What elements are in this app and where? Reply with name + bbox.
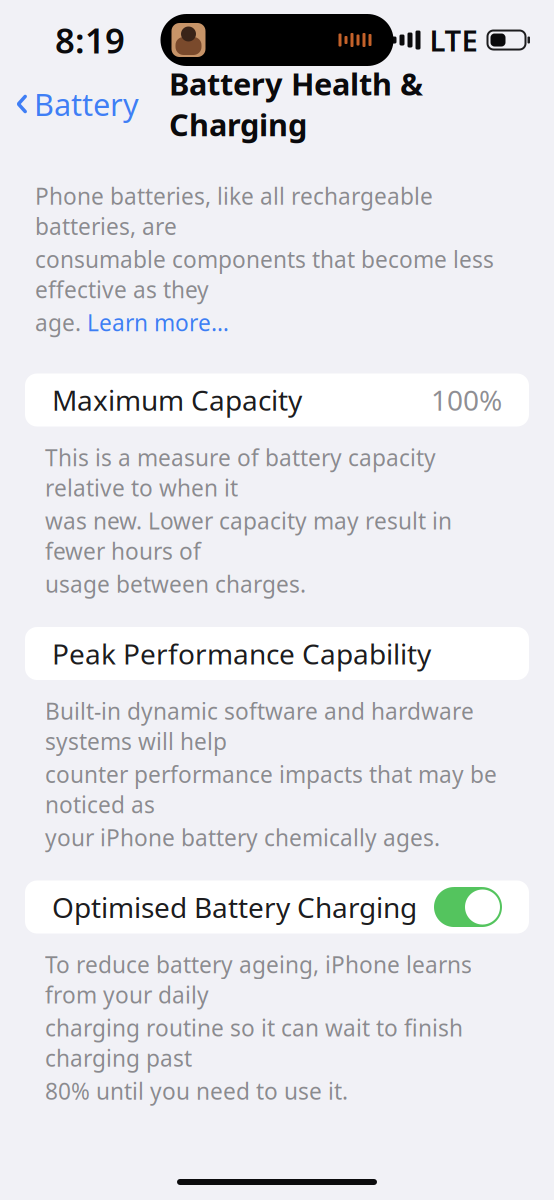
button[interactable]: Peak Performance Capability [25, 627, 529, 680]
staticText: usage between charges. [45, 569, 306, 599]
staticText: This is a measure of battery capacity re… [45, 442, 436, 503]
button[interactable]: Optimised Battery Charging [25, 880, 529, 933]
staticText: your iPhone battery chemically ages. [45, 822, 440, 852]
staticText: charging routine so it can wait to finis… [45, 1013, 463, 1073]
staticText: LTE [429, 20, 477, 59]
staticText: was new. Lower capacity may result in fe… [45, 506, 452, 566]
staticText: Built-in dynamic software and hardware s… [45, 696, 474, 756]
staticText: 80% until you need to use it. [45, 1076, 348, 1106]
button[interactable]: Learn more… [87, 307, 229, 337]
staticText: Maximum Capacity [52, 381, 302, 419]
staticText: Battery Health & Charging [169, 63, 423, 145]
staticText: To reduce battery ageing, iPhone learns … [45, 949, 472, 1010]
staticText: 8:19 [55, 17, 125, 63]
button[interactable]: Maximum Capacity [25, 373, 529, 426]
staticText: Optimised Battery Charging [52, 888, 417, 926]
staticText: consumable components that become less e… [35, 244, 494, 304]
button[interactable]: Battery [0, 78, 139, 130]
staticText: 100% [431, 381, 502, 419]
staticText: Battery [34, 84, 139, 124]
staticText: Peak Performance Capability [52, 635, 431, 672]
staticText: Learn more… [87, 307, 229, 337]
staticText: Phone batteries, like all rechargeable b… [35, 181, 433, 241]
staticText: age. [35, 307, 87, 337]
staticText: counter performance impacts that may be … [45, 759, 497, 819]
